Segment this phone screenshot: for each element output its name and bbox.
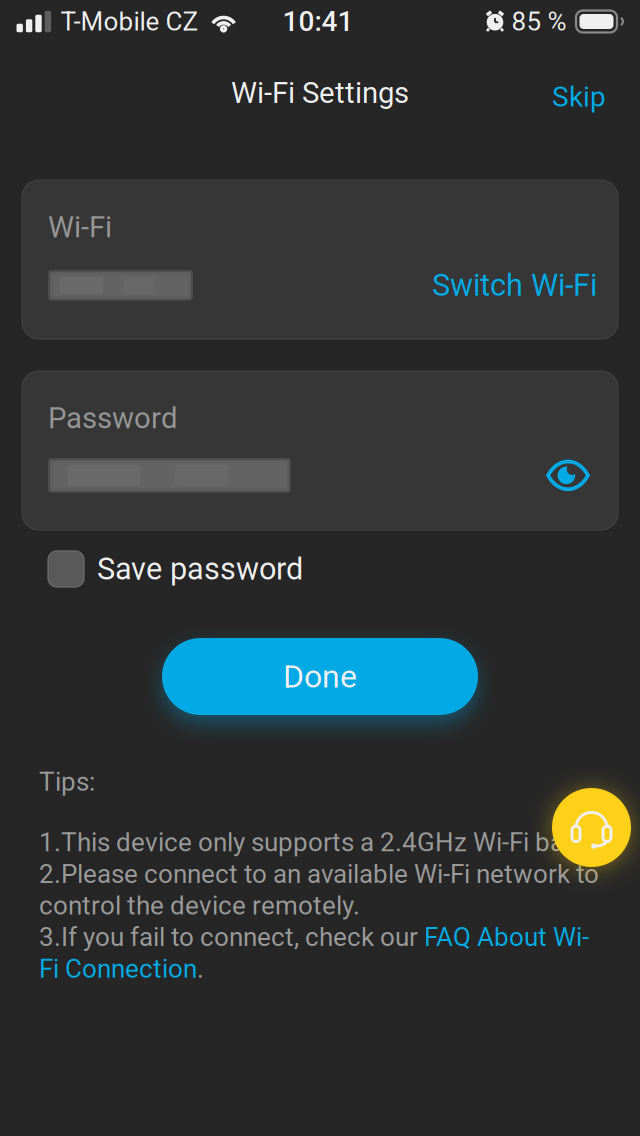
staticText: 2.Please connect to an available Wi-Fi n…: [39, 859, 599, 889]
staticText: Wi-Fi: [48, 210, 112, 244]
button[interactable]: Show password: [544, 457, 592, 493]
staticText: 1.This device only supports a 2.4GHz Wi-…: [39, 827, 600, 858]
button[interactable]: Skip: [538, 65, 620, 121]
staticText: Fi Connection: [39, 954, 197, 984]
staticText: 3.If you fail to connect, check our: [39, 922, 424, 952]
button[interactable]: Switch Wi-Fi: [432, 267, 597, 303]
staticText: Done: [283, 658, 357, 695]
staticText: 85 %: [511, 6, 566, 37]
staticText: Password: [48, 401, 178, 435]
button[interactable]: FAQ About Wi-: [424, 922, 589, 952]
staticText: Save password: [97, 551, 303, 587]
staticText: Wi-Fi Settings: [231, 76, 409, 110]
staticText: Skip: [552, 81, 606, 113]
staticText: Tips:: [39, 767, 95, 797]
staticText: Switch Wi-Fi: [432, 267, 597, 303]
staticText: control the device remotely.: [39, 890, 360, 921]
button[interactable]: Done: [162, 638, 478, 715]
button[interactable]: Customer support: [552, 788, 631, 867]
staticText: .: [197, 954, 204, 984]
staticText: T-Mobile CZ: [61, 6, 199, 37]
staticText: FAQ About Wi-: [424, 922, 589, 952]
button[interactable]: Fi Connection: [39, 954, 204, 984]
button[interactable]: Save password: [48, 551, 303, 587]
staticText: 10:41: [282, 5, 353, 38]
